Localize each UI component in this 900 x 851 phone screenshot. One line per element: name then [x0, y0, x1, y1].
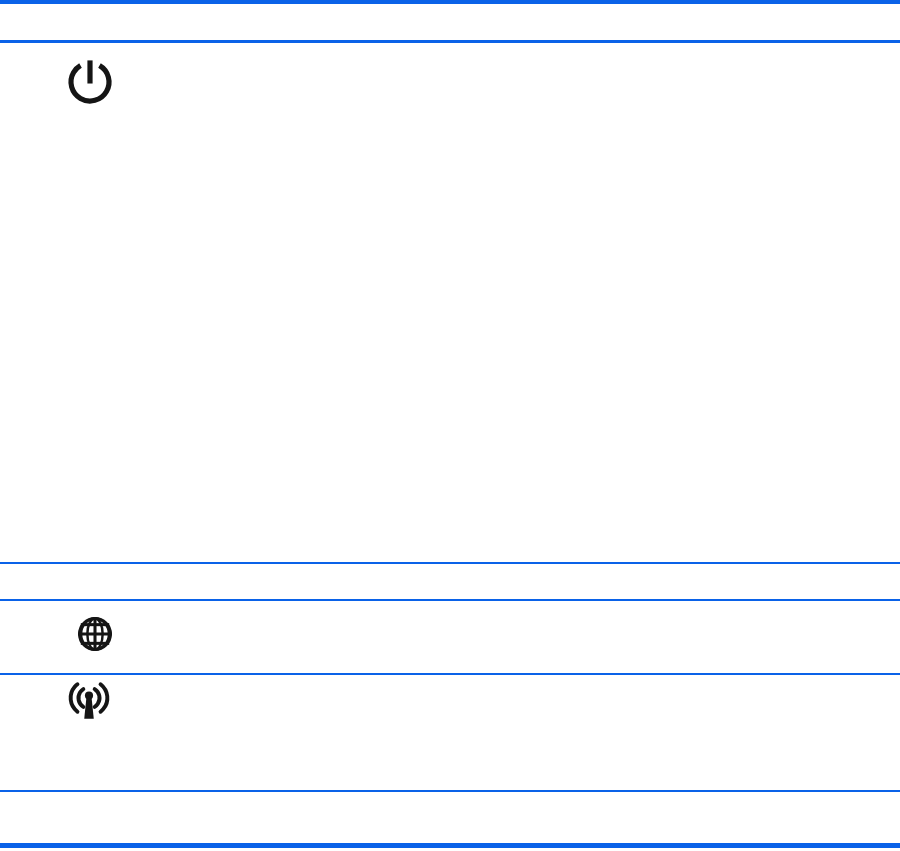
button[interactable]: Wireless — [0, 675, 900, 790]
button[interactable]: Power button — [0, 43, 900, 562]
button[interactable]: Internet browser — [0, 601, 900, 673]
